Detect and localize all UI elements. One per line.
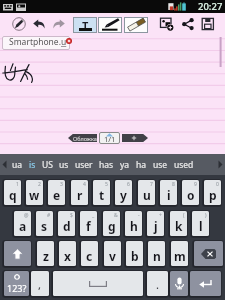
button[interactable]: US: [42, 154, 53, 175]
button[interactable]: Tool: [98, 17, 122, 33]
staticText: 123?: [7, 282, 27, 294]
button[interactable]: Enter: [190, 271, 221, 296]
staticText: i: [167, 187, 171, 203]
staticText: 8: [172, 181, 175, 188]
staticText: x: [64, 248, 71, 264]
button[interactable]: us: [59, 154, 69, 175]
button[interactable]: ya: [120, 154, 130, 175]
button[interactable]: Space: [53, 271, 143, 296]
staticText: z: [43, 248, 49, 264]
staticText: 20:27: [198, 0, 223, 13]
button[interactable]: d: [58, 211, 75, 236]
button[interactable]: i: [160, 180, 177, 205]
staticText: k: [175, 218, 183, 234]
button[interactable]: l: [192, 211, 209, 236]
button[interactable]: v: [104, 241, 121, 266]
staticText: l: [199, 218, 203, 234]
staticText: @: [24, 212, 29, 219]
staticText: e: [53, 187, 61, 203]
staticText: user: [75, 159, 93, 171]
staticText: n: [153, 248, 161, 264]
button[interactable]: t: [93, 180, 110, 205]
staticText: m: [174, 248, 186, 264]
button[interactable]: Pen: [12, 17, 26, 31]
button[interactable]: g: [103, 211, 120, 236]
staticText: is: [29, 159, 36, 171]
staticText: Smartphone.: [9, 36, 61, 48]
button[interactable]: o: [182, 180, 199, 205]
staticText: ha: [136, 159, 147, 171]
staticText: ya: [120, 159, 130, 171]
button[interactable]: Redo: [52, 17, 66, 31]
button[interactable]: use: [153, 154, 168, 175]
staticText: (: [183, 212, 185, 219]
button[interactable]: j: [147, 211, 164, 236]
button[interactable]: Shift: [4, 241, 31, 266]
staticText: 0: [216, 181, 219, 188]
staticText: y: [120, 187, 127, 203]
button[interactable]: ,: [31, 271, 49, 296]
button[interactable]: y: [115, 180, 132, 205]
button[interactable]: .: [147, 271, 168, 296]
button[interactable]: k: [170, 211, 187, 236]
button[interactable]: b: [126, 241, 143, 266]
button[interactable]: is: [29, 154, 36, 175]
button[interactable]: p: [204, 180, 221, 205]
staticText: use: [153, 159, 168, 171]
button[interactable]: u: [138, 180, 155, 205]
button[interactable]: used: [174, 154, 194, 175]
staticText: &: [114, 212, 118, 219]
button[interactable]: Text tool: [73, 17, 97, 33]
staticText: w: [29, 187, 40, 203]
staticText: p: [209, 187, 217, 203]
button[interactable]: r: [71, 180, 88, 205]
staticText: -: [138, 212, 140, 219]
staticText: has: [99, 159, 114, 171]
staticText: u: [143, 187, 151, 203]
staticText: q: [9, 187, 17, 203]
button[interactable]: e: [48, 180, 65, 205]
button[interactable]: w: [26, 180, 43, 205]
button[interactable]: Add image: [160, 17, 174, 31]
button[interactable]: f: [80, 211, 97, 236]
button[interactable]: h: [125, 211, 142, 236]
staticText: us: [59, 159, 69, 171]
staticText: T: [82, 18, 89, 33]
button[interactable]: x: [59, 241, 76, 266]
staticText: s: [41, 218, 48, 234]
staticText: h: [130, 218, 138, 234]
button[interactable]: ha: [136, 154, 147, 175]
button[interactable]: ua: [12, 154, 23, 175]
button[interactable]: s: [36, 211, 53, 236]
button[interactable]: a: [14, 211, 31, 236]
button[interactable]: z: [37, 241, 54, 266]
staticText: 6: [127, 181, 130, 188]
staticText: ua: [61, 36, 70, 50]
staticText: +: [159, 212, 162, 219]
button[interactable]: Close: [66, 38, 72, 44]
button[interactable]: Backspace: [194, 241, 223, 266]
staticText: a: [19, 218, 27, 234]
button[interactable]: n: [148, 241, 165, 266]
button[interactable]: m: [171, 241, 188, 266]
staticText: 4: [83, 181, 86, 188]
button[interactable]: Share: [181, 17, 195, 31]
button[interactable]: user: [75, 154, 93, 175]
staticText: f: [86, 218, 91, 234]
button[interactable]: c: [81, 241, 98, 266]
button[interactable]: Voice input: [170, 271, 188, 296]
button[interactable]: Smartphone.: [2, 36, 70, 50]
button[interactable]: Save: [201, 17, 215, 31]
button[interactable]: Symbols: [4, 271, 29, 296]
staticText: $: [70, 212, 73, 219]
staticText: t: [99, 187, 105, 203]
button[interactable]: Undo: [32, 17, 46, 31]
staticText: j: [154, 218, 158, 234]
button[interactable]: Tool: [124, 17, 148, 33]
button[interactable]: has: [99, 154, 114, 175]
button[interactable]: 1/1: [99, 132, 120, 144]
staticText: 2: [38, 181, 41, 188]
button[interactable]: Обложка: [68, 134, 97, 142]
button[interactable]: Add page: [122, 134, 148, 142]
button[interactable]: q: [4, 180, 21, 205]
